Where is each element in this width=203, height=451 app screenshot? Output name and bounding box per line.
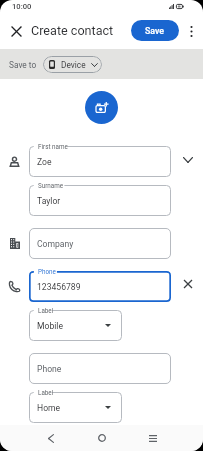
button[interactable]: Recent apps: [142, 427, 164, 449]
button[interactable]: Expand name fields: [181, 153, 195, 167]
button[interactable]: Company: [29, 228, 171, 259]
staticText: Phone: [37, 364, 62, 374]
staticText: Zoe: [37, 157, 52, 167]
staticText: Label: [38, 389, 54, 396]
staticText: Taylor: [37, 196, 61, 206]
staticText: 123456789: [37, 282, 81, 292]
staticText: Company: [37, 239, 74, 249]
staticText: Device: [61, 60, 86, 70]
staticText: Label: [38, 307, 54, 314]
button[interactable]: Back: [40, 427, 62, 449]
button[interactable]: Home: [91, 427, 113, 449]
button[interactable]: Mobile: [29, 310, 122, 341]
staticText: Save to: [9, 60, 37, 70]
button[interactable]: Home: [29, 392, 122, 423]
staticText: First name: [38, 143, 68, 150]
button[interactable]: 123456789: [29, 271, 171, 302]
staticText: Save: [145, 26, 165, 36]
button[interactable]: Zoe: [29, 146, 171, 177]
button[interactable]: Taylor: [29, 185, 171, 216]
button[interactable]: More options: [184, 24, 198, 38]
button[interactable]: Phone: [29, 353, 171, 384]
staticText: Create contact: [31, 23, 114, 38]
button[interactable]: Clear phone: [181, 277, 195, 291]
button[interactable]: Close: [7, 22, 25, 40]
staticText: Phone: [38, 268, 56, 275]
button[interactable]: Add photo: [85, 91, 118, 124]
staticText: 10:00: [12, 2, 32, 11]
staticText: Home: [37, 403, 61, 413]
staticText: Mobile: [37, 321, 63, 331]
button[interactable]: Device: [43, 56, 102, 73]
staticText: Surname: [38, 182, 64, 189]
button[interactable]: Save: [131, 20, 179, 41]
